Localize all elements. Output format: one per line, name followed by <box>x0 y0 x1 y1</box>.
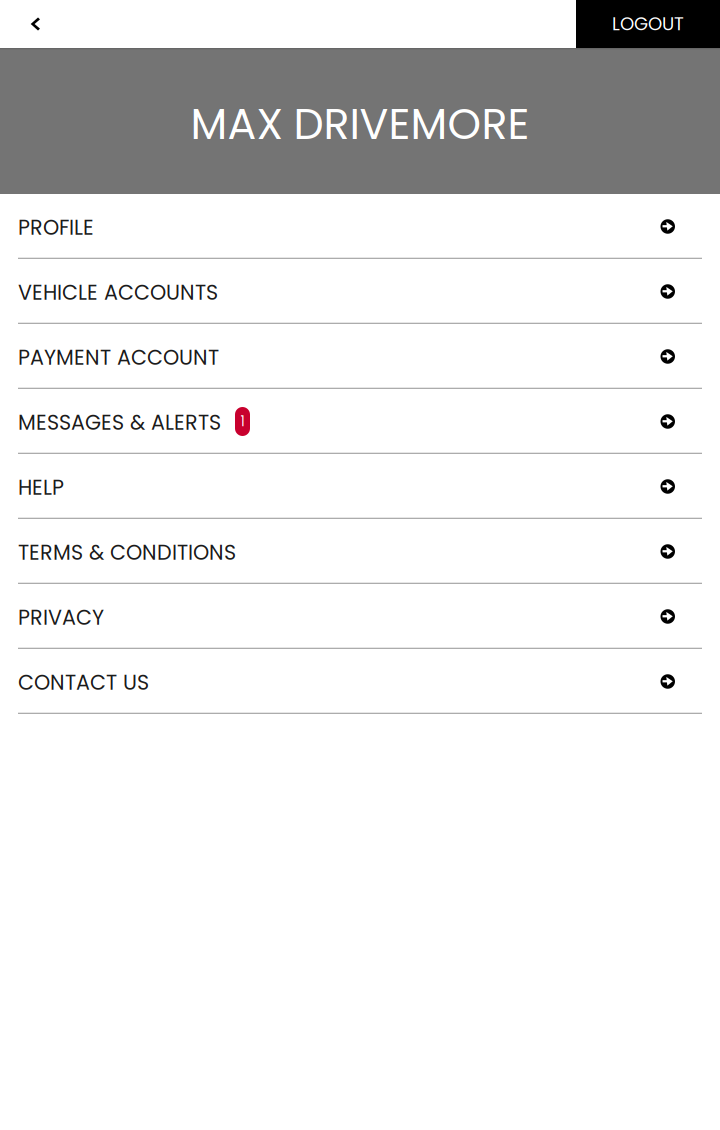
button[interactable]: HELP <box>0 454 720 519</box>
staticText: CONTACT US <box>18 668 149 697</box>
button[interactable]: TERMS & CONDITIONS <box>0 519 720 584</box>
button[interactable]: VEHICLE ACCOUNTS <box>0 259 720 324</box>
button[interactable]: MESSAGES & ALERTS <box>0 389 720 454</box>
staticText: MESSAGES & ALERTS <box>18 408 221 437</box>
button[interactable]: PROFILE <box>0 194 720 259</box>
button[interactable]: CONTACT US <box>0 649 720 714</box>
staticText: PRIVACY <box>18 603 104 632</box>
button[interactable]: PAYMENT ACCOUNT <box>0 324 720 389</box>
staticText: MAX DRIVEMORE <box>190 94 529 154</box>
button[interactable]: Back <box>0 0 72 48</box>
staticText: LOGOUT <box>612 11 684 37</box>
staticText: VEHICLE ACCOUNTS <box>18 278 218 307</box>
staticText: TERMS & CONDITIONS <box>18 538 236 567</box>
button[interactable]: LOGOUT <box>576 0 720 48</box>
staticText: PROFILE <box>18 213 94 242</box>
staticText: HELP <box>18 473 64 502</box>
staticText: 1 <box>240 412 244 431</box>
staticText: PAYMENT ACCOUNT <box>18 343 219 372</box>
button[interactable]: PRIVACY <box>0 584 720 649</box>
